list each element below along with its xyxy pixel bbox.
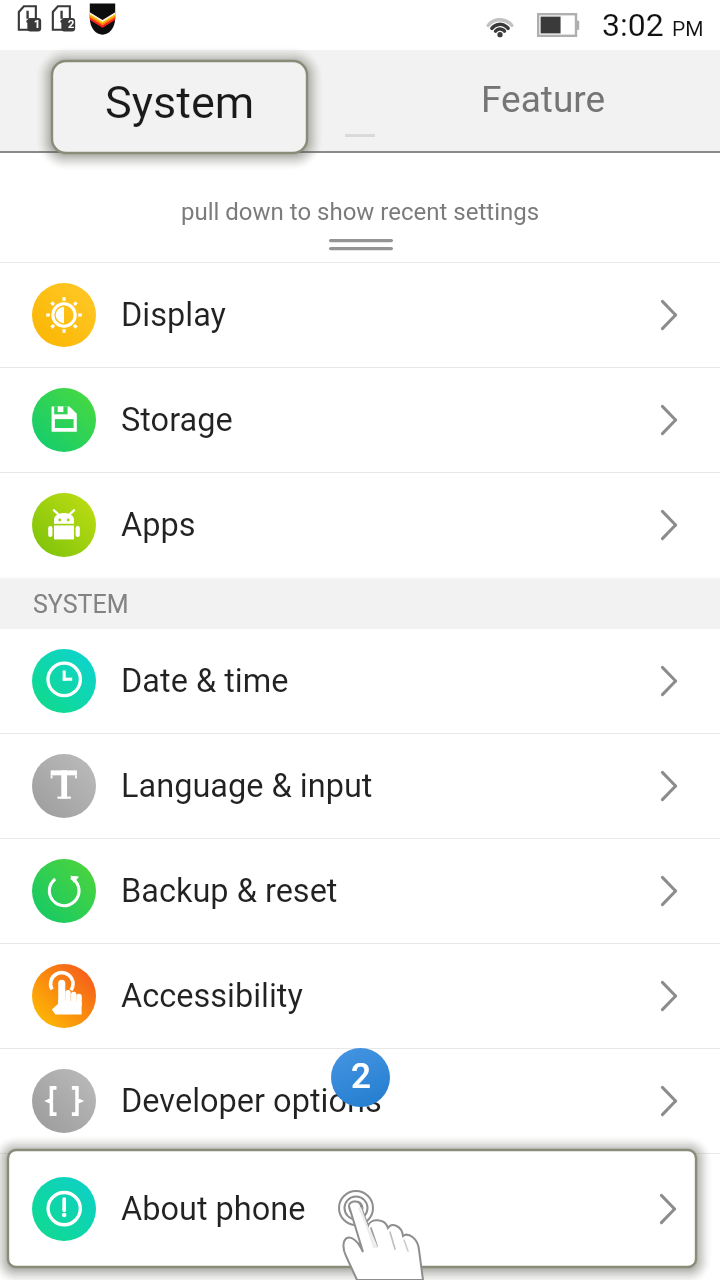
button[interactable]: System	[52, 61, 307, 153]
button[interactable]: About phone	[0, 1154, 720, 1258]
button[interactable]: Language & input	[0, 734, 720, 838]
staticText: Accessibility	[121, 977, 303, 1015]
button[interactable]: Backup & reset	[0, 839, 720, 943]
button[interactable]: Date & time	[0, 629, 720, 733]
staticText: 2	[351, 1056, 371, 1097]
staticText: Language & input	[121, 767, 373, 805]
staticText: Feature	[481, 78, 606, 121]
staticText: System	[105, 76, 255, 129]
staticText: Display	[121, 296, 226, 334]
button[interactable]: Storage	[0, 368, 720, 472]
staticText: SYSTEM	[33, 590, 129, 619]
staticText: About phone	[121, 1187, 306, 1225]
staticText: PM	[672, 17, 704, 42]
staticText: pull down to show recent settings	[181, 198, 540, 226]
staticText: Backup & reset	[121, 872, 338, 910]
staticText: Date & time	[121, 662, 289, 700]
staticText: Storage	[121, 401, 233, 439]
button[interactable]: About phone	[8, 1150, 711, 1267]
staticText: 3:02	[602, 6, 664, 44]
button[interactable]: Apps	[0, 473, 720, 577]
staticText: Apps	[121, 506, 196, 544]
button[interactable]: Developer options	[0, 1049, 720, 1153]
staticText: Developer options	[121, 1082, 382, 1120]
button[interactable]: Accessibility	[0, 944, 720, 1048]
button[interactable]: Feature	[360, 50, 720, 153]
staticText: 2	[68, 18, 75, 31]
button[interactable]: Display	[0, 263, 720, 367]
staticText: 1	[34, 18, 41, 31]
staticText: About phone	[121, 1190, 306, 1228]
